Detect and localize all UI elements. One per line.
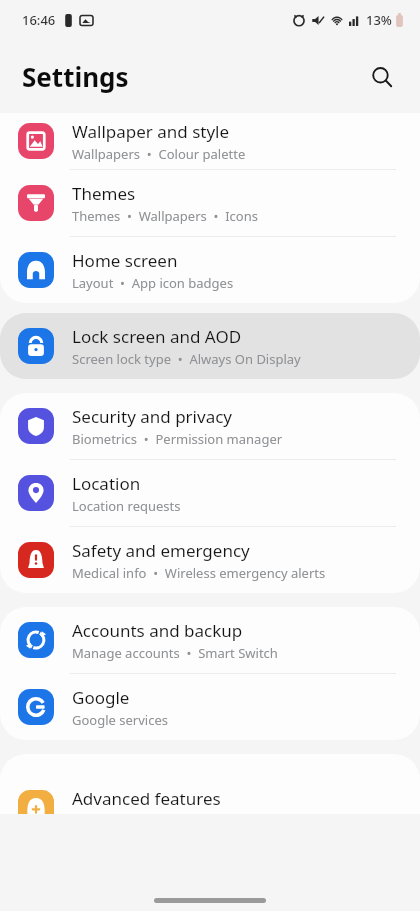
staticText: Location requests (72, 497, 181, 515)
staticText: Biometrics • Permission manager (72, 430, 283, 448)
staticText: Themes (72, 182, 136, 205)
staticText: 13% (366, 11, 392, 29)
staticText: Medical info • Wireless emergency alerts (72, 564, 326, 582)
staticText: Wallpaper and style (72, 120, 230, 143)
button[interactable]: Accounts and backup (0, 607, 420, 674)
staticText: Location (72, 472, 141, 495)
staticText: Themes • Wallpapers • Icons (72, 207, 258, 225)
button[interactable]: Security and privacy (0, 393, 420, 460)
button[interactable]: Advanced features (0, 754, 420, 814)
staticText: Settings (22, 59, 129, 94)
staticText: Manage accounts • Smart Switch (72, 644, 278, 662)
staticText: Safety and emergency (72, 539, 250, 562)
staticText: 16:46 (22, 11, 56, 29)
staticText: Screen lock type • Always On Display (72, 350, 301, 368)
staticText: Layout • App icon badges (72, 274, 234, 292)
button[interactable]: Wallpaper and style (0, 113, 420, 170)
staticText: Advanced features (72, 787, 221, 810)
staticText: Accounts and backup (72, 619, 243, 642)
staticText: Lock screen and AOD (72, 325, 242, 348)
button[interactable]: Google (0, 674, 420, 740)
staticText: Google services (72, 711, 168, 729)
button[interactable]: Lock screen and AOD (0, 313, 420, 379)
button[interactable]: Home screen (0, 237, 420, 303)
staticText: Home screen (72, 249, 178, 272)
button[interactable]: Safety and emergency (0, 527, 420, 593)
staticText: Security and privacy (72, 405, 233, 428)
staticText: Wallpapers • Colour palette (72, 145, 246, 163)
button[interactable]: Search (362, 57, 402, 97)
button[interactable]: Themes (0, 170, 420, 237)
button[interactable]: Location (0, 460, 420, 527)
staticText: Google (72, 686, 130, 709)
